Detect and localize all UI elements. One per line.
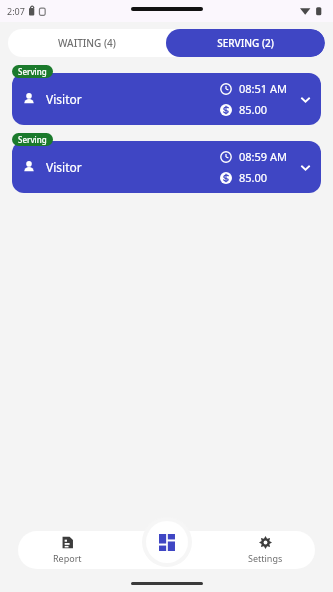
staticText: 85.00 bbox=[239, 170, 268, 185]
staticText: WAITING (4) bbox=[58, 36, 116, 50]
staticText: Serving bbox=[18, 134, 47, 145]
staticText: 08:51 AM bbox=[239, 81, 287, 96]
staticText: Serving bbox=[18, 66, 47, 77]
button[interactable]: SERVING (2) bbox=[166, 29, 325, 57]
button[interactable]: Expand bbox=[295, 157, 315, 177]
staticText: 85.00 bbox=[239, 102, 268, 117]
staticText: Settings bbox=[248, 552, 283, 564]
staticText: Visitor bbox=[46, 159, 82, 175]
button[interactable]: Expand bbox=[295, 89, 315, 109]
button[interactable]: Dashboard bbox=[146, 521, 188, 563]
staticText: Report bbox=[53, 552, 82, 564]
button[interactable]: Report bbox=[18, 531, 117, 569]
button[interactable]: Visitor bbox=[12, 141, 321, 193]
button[interactable]: Settings bbox=[216, 531, 315, 569]
staticText: 2:07 bbox=[7, 5, 25, 17]
staticText: Visitor bbox=[46, 91, 82, 107]
staticText: SERVING (2) bbox=[217, 36, 274, 50]
button[interactable]: Visitor bbox=[12, 73, 321, 125]
button[interactable]: WAITING (4) bbox=[8, 29, 166, 57]
staticText: 08:59 AM bbox=[239, 149, 287, 164]
